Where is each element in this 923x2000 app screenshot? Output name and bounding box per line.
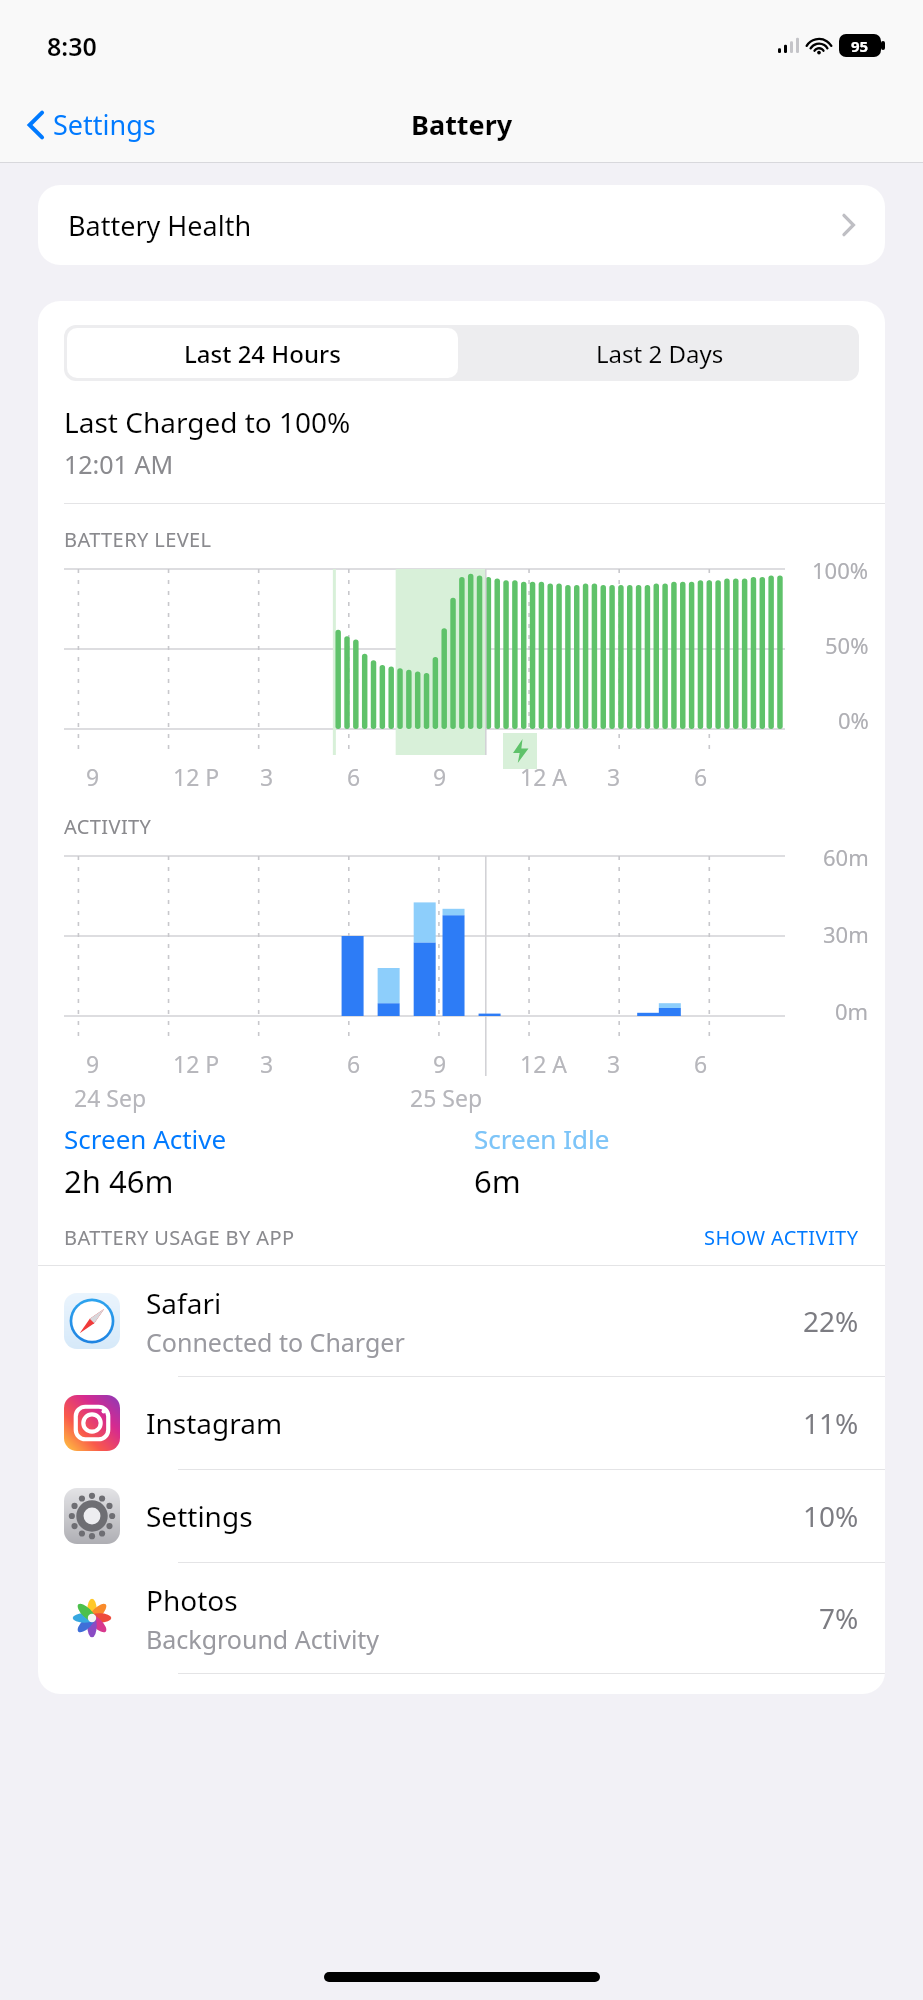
- button[interactable]: Instagram: [38, 1377, 885, 1469]
- staticText: 12 P: [173, 761, 220, 792]
- staticText: 50%: [825, 630, 869, 660]
- staticText: 22%: [803, 1302, 859, 1340]
- staticText: 11%: [803, 1404, 859, 1442]
- staticText: Safari: [146, 1284, 222, 1322]
- staticText: 8:30: [47, 29, 97, 63]
- staticText: 3: [260, 1048, 274, 1079]
- staticText: 60m: [823, 842, 869, 872]
- staticText: 6: [694, 1048, 708, 1079]
- button[interactable]: Settings: [22, 100, 162, 149]
- staticText: Last 24 Hours: [184, 337, 341, 370]
- staticText: Screen Idle: [474, 1121, 610, 1156]
- staticText: 6: [694, 761, 708, 792]
- staticText: 9: [433, 1048, 447, 1079]
- staticText: 100%: [812, 555, 869, 585]
- staticText: 6: [347, 1048, 361, 1079]
- staticText: 6: [347, 761, 361, 792]
- staticText: Instagram: [146, 1404, 283, 1442]
- staticText: 3: [260, 761, 274, 792]
- staticText: Connected to Charger: [146, 1325, 405, 1359]
- staticText: 9: [86, 761, 100, 792]
- staticText: 95: [851, 36, 869, 56]
- staticText: 12 A: [520, 1048, 567, 1079]
- staticText: 12 P: [173, 1048, 220, 1079]
- staticText: 7%: [819, 1599, 859, 1637]
- button[interactable]: Photos: [38, 1563, 885, 1673]
- staticText: 10%: [803, 1497, 859, 1535]
- staticText: Background Activity: [146, 1622, 380, 1656]
- button[interactable]: SHOW ACTIVITY: [704, 1224, 859, 1251]
- staticText: 3: [607, 1048, 621, 1079]
- staticText: 3: [607, 761, 621, 792]
- staticText: 9: [433, 761, 447, 792]
- staticText: 6m: [474, 1160, 521, 1202]
- staticText: Settings: [146, 1497, 253, 1535]
- button[interactable]: Battery Health: [38, 185, 885, 265]
- staticText: 30m: [823, 919, 869, 949]
- staticText: BATTERY USAGE BY APP: [64, 1224, 295, 1251]
- staticText: Last 2 Days: [596, 337, 724, 370]
- staticText: Battery Health: [68, 207, 252, 244]
- staticText: SHOW ACTIVITY: [704, 1224, 859, 1251]
- staticText: 12 A: [520, 761, 567, 792]
- staticText: 24 Sep: [74, 1082, 147, 1113]
- staticText: 2h 46m: [64, 1160, 174, 1202]
- staticText: 25 Sep: [410, 1082, 483, 1113]
- staticText: 0m: [835, 996, 869, 1026]
- staticText: Photos: [146, 1581, 238, 1619]
- button[interactable]: Last 24 Hours: [67, 328, 458, 378]
- button[interactable]: Safari: [38, 1266, 885, 1376]
- staticText: 12:01 AM: [64, 447, 174, 481]
- staticText: BATTERY LEVEL: [64, 526, 212, 553]
- button[interactable]: Last 2 Days: [461, 325, 859, 381]
- staticText: 0%: [838, 705, 869, 735]
- button[interactable]: Settings: [38, 1470, 885, 1562]
- staticText: ACTIVITY: [64, 813, 152, 840]
- staticText: Screen Active: [64, 1121, 227, 1156]
- staticText: Last Charged to 100%: [64, 403, 351, 441]
- staticText: 9: [86, 1048, 100, 1079]
- staticText: Battery: [411, 106, 513, 143]
- staticText: Settings: [53, 106, 156, 143]
